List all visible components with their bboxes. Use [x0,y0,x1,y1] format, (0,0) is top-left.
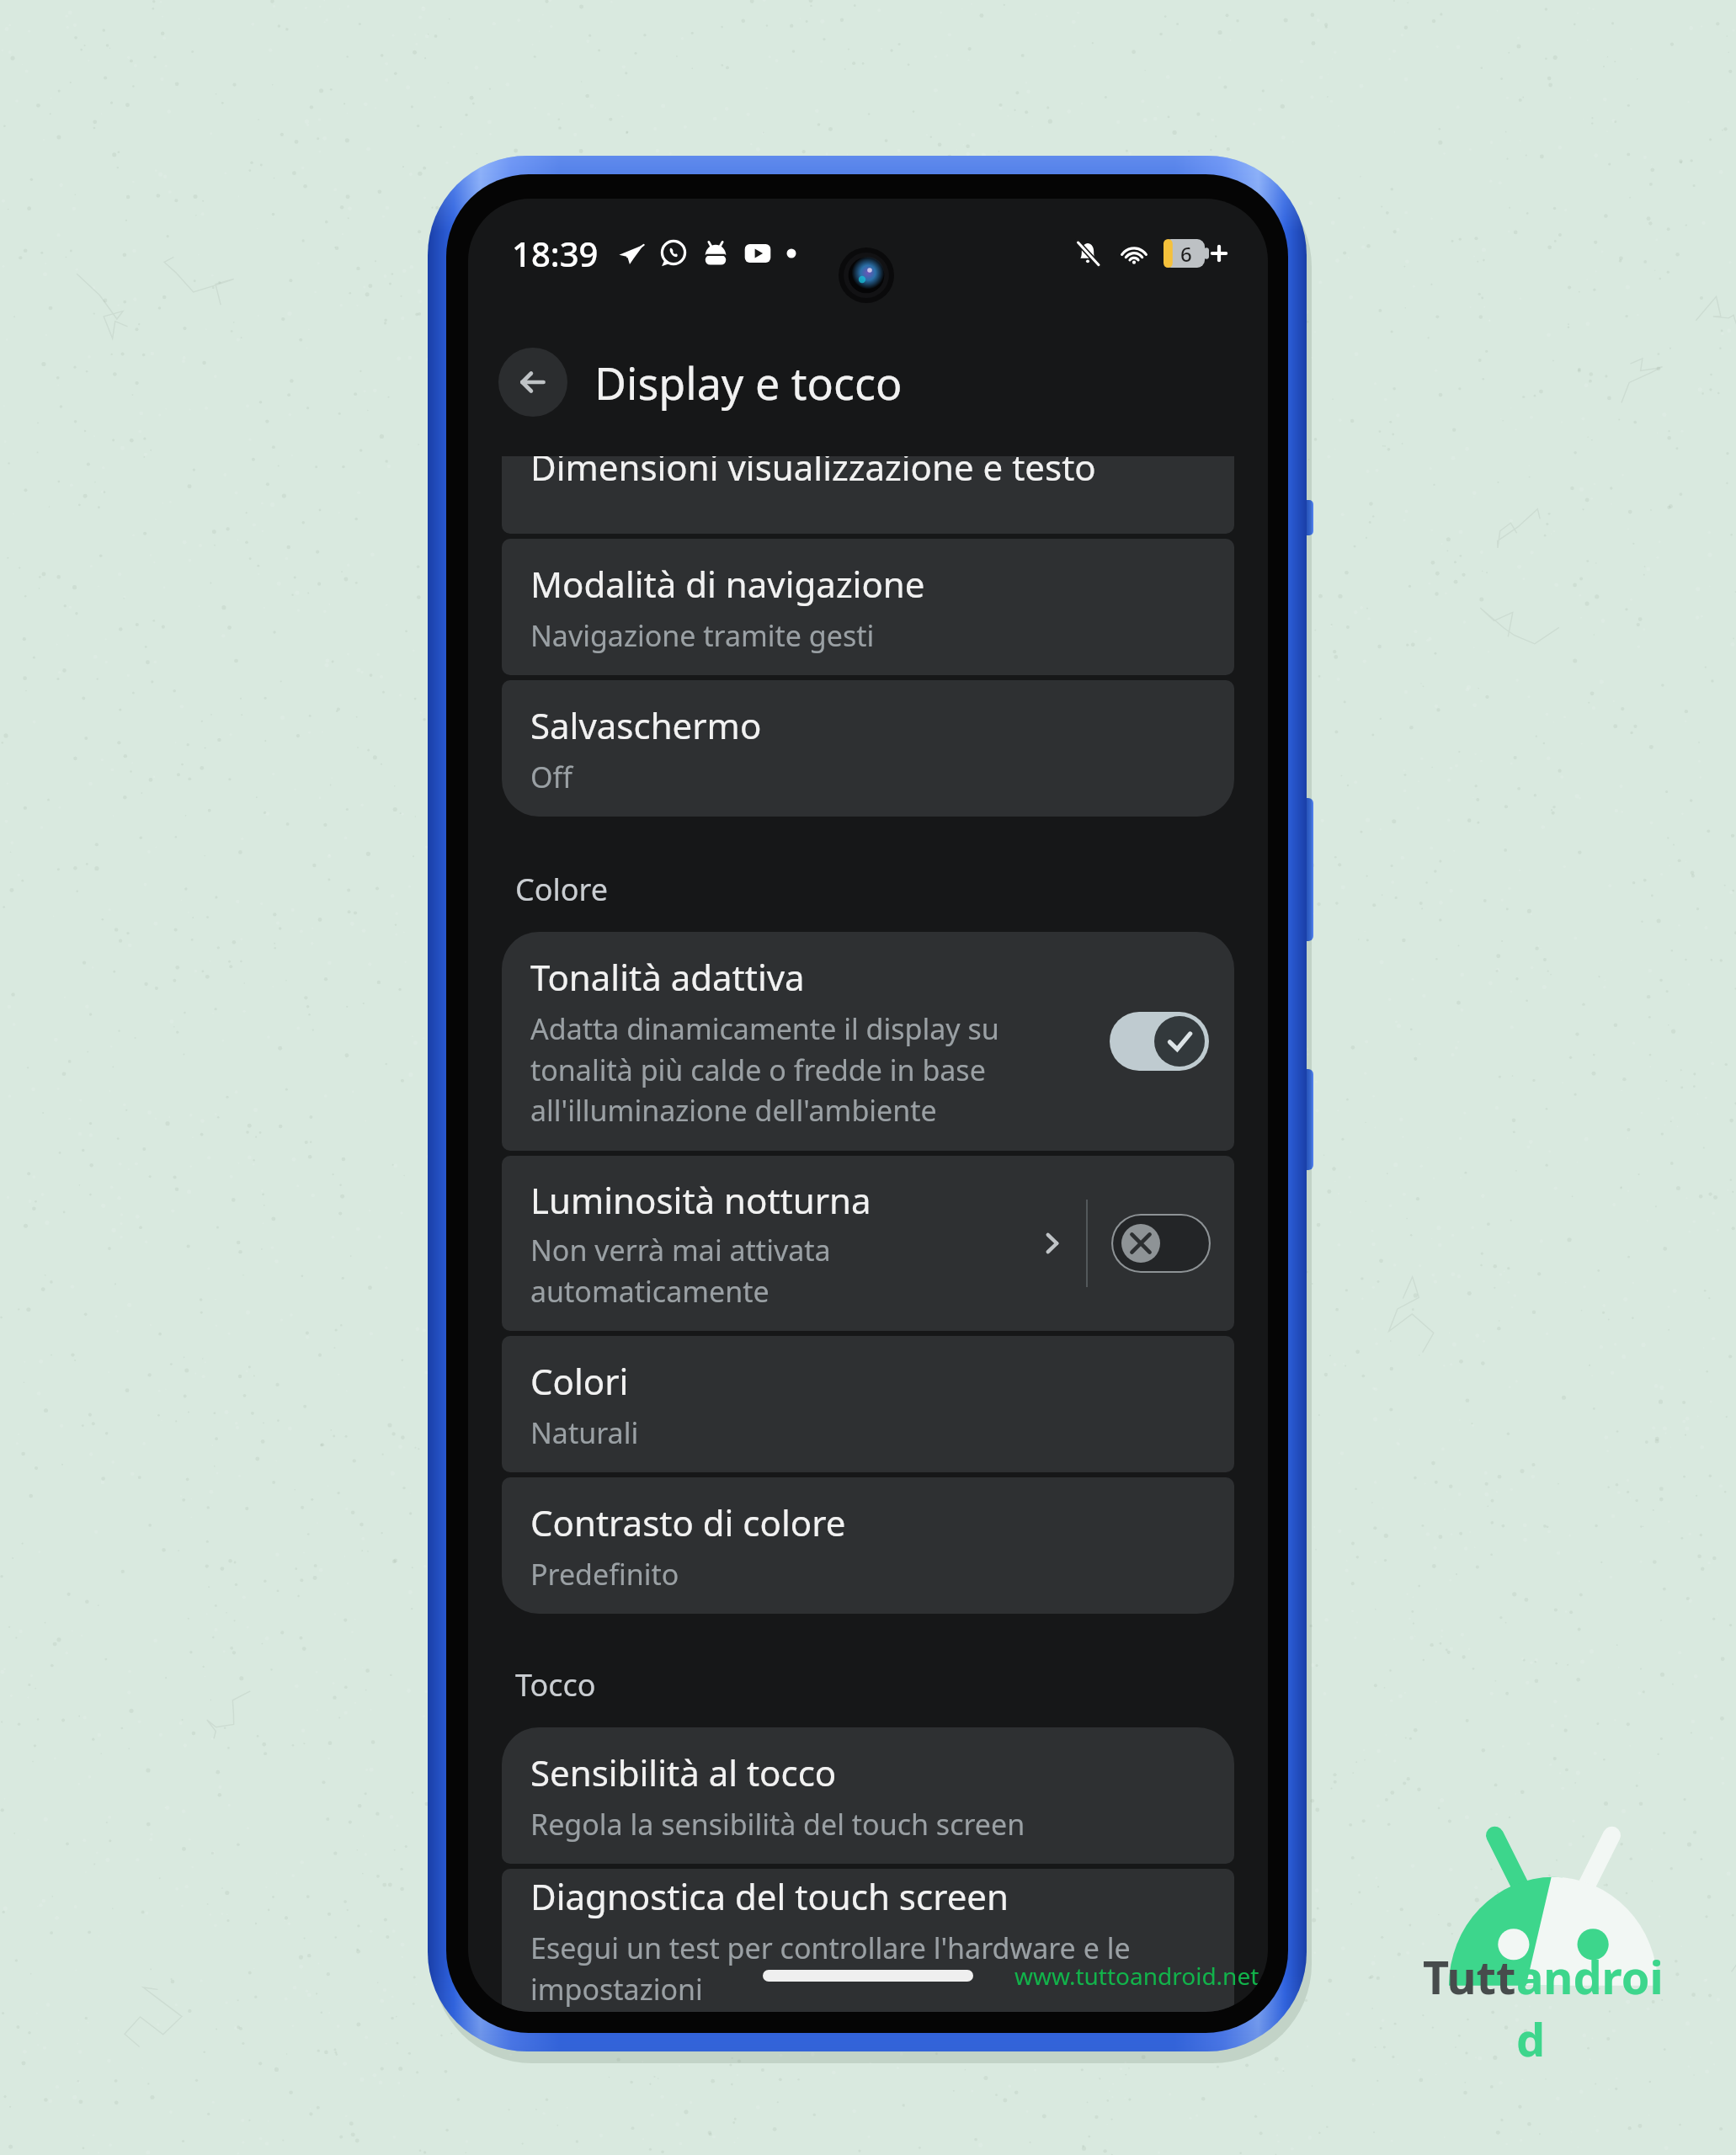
staticText: Diagnostica del touch screen [530,1872,1009,1920]
staticText: www.tuttoandroid.net [1014,1960,1259,1992]
button[interactable]: Tonalità adattiva, attivo [1110,1012,1209,1071]
staticText: Non verrà mai attivata automaticamente [530,1231,1034,1311]
button[interactable]: Sensibilità al tocco [502,1727,1234,1864]
staticText: Display e tocco [594,353,903,412]
button[interactable]: Contrasto di colore [502,1477,1234,1614]
button[interactable]: Colori [502,1336,1234,1472]
staticText: Tocco [515,1664,596,1705]
staticText: Modalità di navigazione [530,560,925,608]
staticText: Naturali [530,1413,639,1452]
button[interactable]: Diagnostica del touch screen [502,1869,1234,2012]
button[interactable]: Salvaschermo [502,680,1234,817]
staticText: Contrasto di colore [530,1498,846,1546]
staticText: Luminosità notturna [530,1176,871,1224]
staticText: Esegui un test per controllare l'hardwar… [530,1929,1206,2009]
staticText: Colore [515,869,609,910]
staticText: Navigazione tramite gesti [530,616,875,655]
button[interactable]: Back [498,348,567,417]
staticText: 6 [1180,240,1192,268]
staticText: Tutt [1423,1945,1516,2008]
staticText: Off [530,758,572,796]
button[interactable]: Luminosità notturna, disattivo [1111,1214,1211,1273]
staticText: Adatta dinamicamente il display su tonal… [530,1009,1094,1130]
staticText: Regola la sensibilità del touch screen [530,1805,1025,1844]
button[interactable]: Tonalità adattiva [502,932,1234,1151]
staticText: Salvaschermo [530,701,762,749]
staticText: 18:39 [512,231,599,276]
button[interactable]: Luminosità notturna [502,1156,1234,1331]
button[interactable]: Luminosità notturna [502,1176,1086,1311]
button[interactable]: Modalità di navigazione [502,539,1234,675]
staticText: Dimensioni visualizzazione e testo [530,456,1096,491]
staticText: Predefinito [530,1555,679,1594]
staticText: Tonalità adattiva [530,953,805,1001]
other: Front camera [839,247,894,303]
staticText: Colori [530,1357,629,1405]
button[interactable]: Dimensioni visualizzazione e testo [502,456,1234,534]
staticText: android [1516,1945,1684,2070]
staticText: Sensibilità al tocco [530,1748,837,1796]
